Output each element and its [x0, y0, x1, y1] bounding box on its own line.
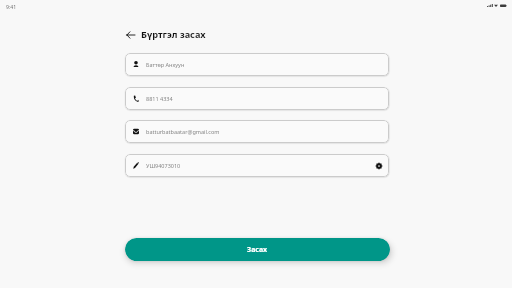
button[interactable]: Баттөр Анхуун — [125, 53, 389, 76]
button[interactable]: Back — [125, 27, 136, 42]
button[interactable]: Settings — [374, 161, 383, 170]
staticText: Бүртгэл засах — [141, 28, 206, 41]
staticText: Баттөр Анхуун — [146, 61, 185, 68]
staticText: УШ94073010 — [146, 162, 181, 169]
staticText: Засах — [247, 245, 268, 255]
staticText: batturbatbaatar@gmail.com — [146, 128, 220, 135]
button[interactable]: 8811 4334 — [125, 87, 389, 110]
button[interactable]: Засах — [125, 238, 390, 261]
staticText: 9:41 — [6, 3, 17, 10]
button[interactable]: batturbatbaatar@gmail.com — [125, 120, 389, 143]
staticText: 8811 4334 — [146, 95, 173, 102]
button[interactable]: УШ94073010 — [125, 154, 389, 177]
